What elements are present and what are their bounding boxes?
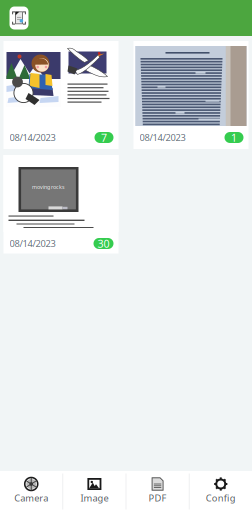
- staticText: PDF: [149, 492, 167, 504]
- staticText: moving rocks: [32, 183, 65, 191]
- staticText: Camera: [14, 492, 48, 504]
- staticText: 7: [101, 130, 107, 145]
- button[interactable]: Image: [63, 471, 126, 512]
- staticText: 30: [97, 236, 109, 251]
- staticText: Image: [80, 492, 108, 504]
- button[interactable]: moving rocks: [3, 155, 118, 255]
- staticText: Config: [206, 492, 236, 504]
- button[interactable]: Config: [189, 471, 252, 512]
- staticText: 08/14/2023: [9, 237, 55, 250]
- button[interactable]: PDF: [126, 471, 189, 512]
- staticText: 1: [231, 130, 237, 145]
- button[interactable]: 08/14/2023: [3, 41, 118, 149]
- button[interactable]: Scanner app: [5, 2, 33, 34]
- staticText: 08/14/2023: [9, 131, 55, 144]
- button[interactable]: Camera: [0, 471, 62, 512]
- button[interactable]: 08/14/2023: [133, 41, 248, 149]
- staticText: 08/14/2023: [139, 131, 185, 144]
